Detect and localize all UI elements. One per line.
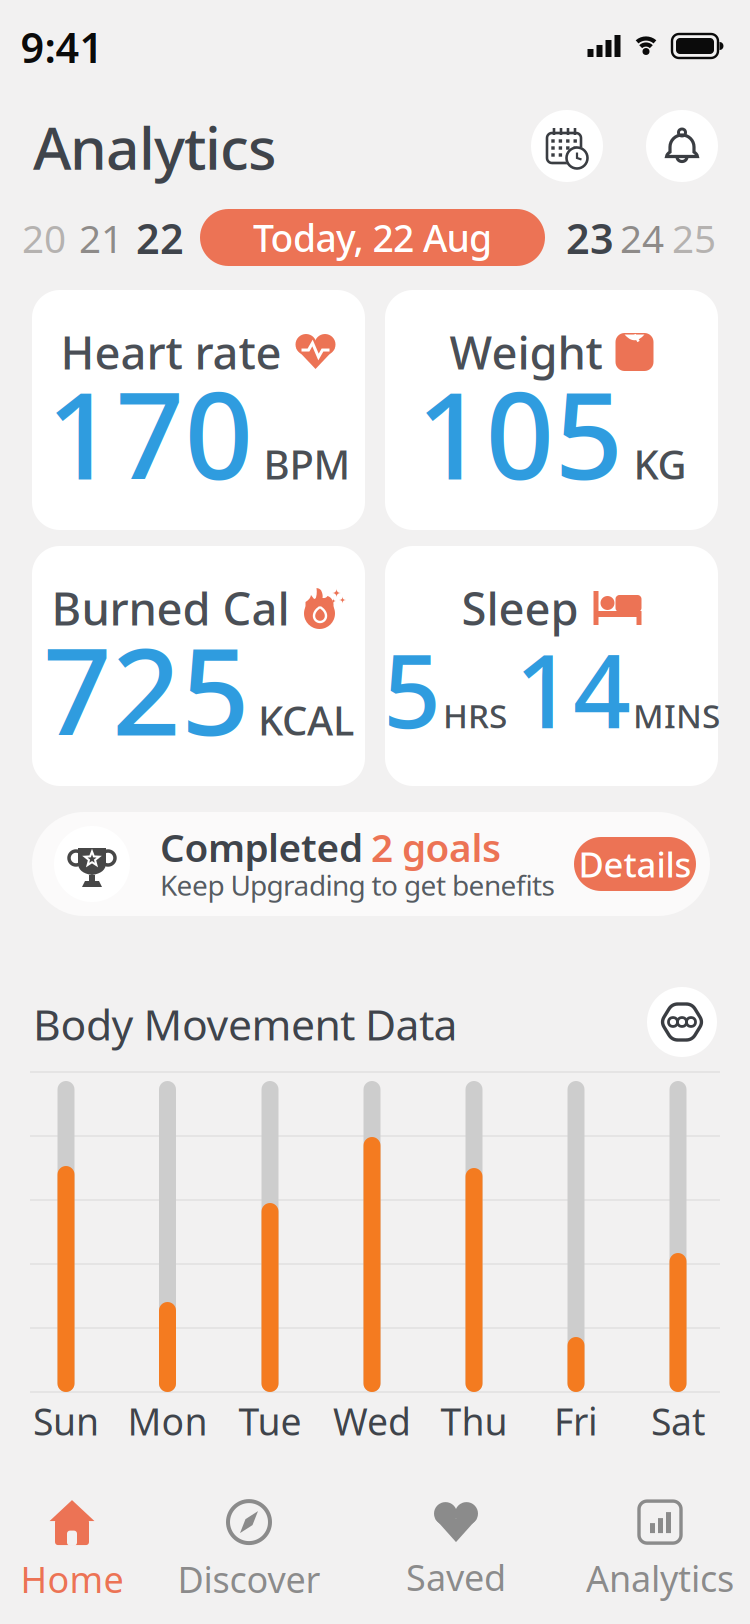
button[interactable]: Discover [174,1496,324,1606]
staticText: HRS [443,693,507,738]
staticText: Weight [449,322,602,382]
staticText: 170 [46,353,253,513]
button[interactable]: More options [647,987,717,1057]
staticText: Analytics [33,108,277,186]
staticText: Tue [238,1396,301,1446]
button[interactable]: Calendar [531,110,603,182]
staticText: Thu [440,1396,507,1446]
staticText: Home [20,1555,123,1603]
staticText: 21 [79,212,123,264]
button[interactable]: Details [574,837,696,891]
staticText: Sat [651,1396,705,1446]
button[interactable]: 25 [672,212,716,264]
staticText: Body Movement Data [33,996,457,1052]
staticText: MINS [633,693,720,738]
staticText: 2 goals [371,821,501,873]
staticText: Sleep [461,578,578,638]
staticText: KCAL [258,693,354,747]
button[interactable]: 24 [620,212,664,264]
staticText: 725 [43,609,250,769]
staticText: 23 [566,211,614,265]
staticText: Discover [177,1555,320,1603]
staticText: Mon [127,1396,207,1446]
staticText: 22 [136,211,184,265]
staticText: 5 [383,622,441,756]
staticText: Heart rate [60,322,281,382]
staticText: 14 [515,622,631,756]
staticText: BPM [263,437,350,491]
staticText: KG [633,437,686,491]
staticText: Keep Upgrading to get benefits [160,866,554,904]
staticText: Fri [554,1396,598,1446]
staticText: 25 [672,212,716,264]
staticText: Completed [160,821,363,873]
button[interactable]: Notifications [646,110,718,182]
staticText: 24 [620,212,664,264]
staticText: Saved [406,1553,506,1601]
button[interactable]: 21 [79,212,123,264]
staticText: Today, 22 Aug [253,213,492,262]
staticText: Analytics [586,1554,734,1602]
button[interactable]: Home [0,1496,147,1606]
staticText: 9:41 [20,20,103,74]
staticText: Details [578,841,691,887]
button[interactable]: Today, 22 Aug [200,209,545,266]
staticText: 20 [22,212,66,264]
button[interactable]: 23 [566,211,614,265]
staticText: Wed [333,1396,411,1446]
button[interactable]: Analytics [585,1496,735,1606]
staticText: Burned Cal [51,578,289,638]
button[interactable]: Saved [381,1496,531,1606]
staticText: 105 [416,353,623,513]
button[interactable]: 22 [136,211,184,265]
staticText: Sun [33,1396,99,1446]
button[interactable]: 20 [22,212,66,264]
